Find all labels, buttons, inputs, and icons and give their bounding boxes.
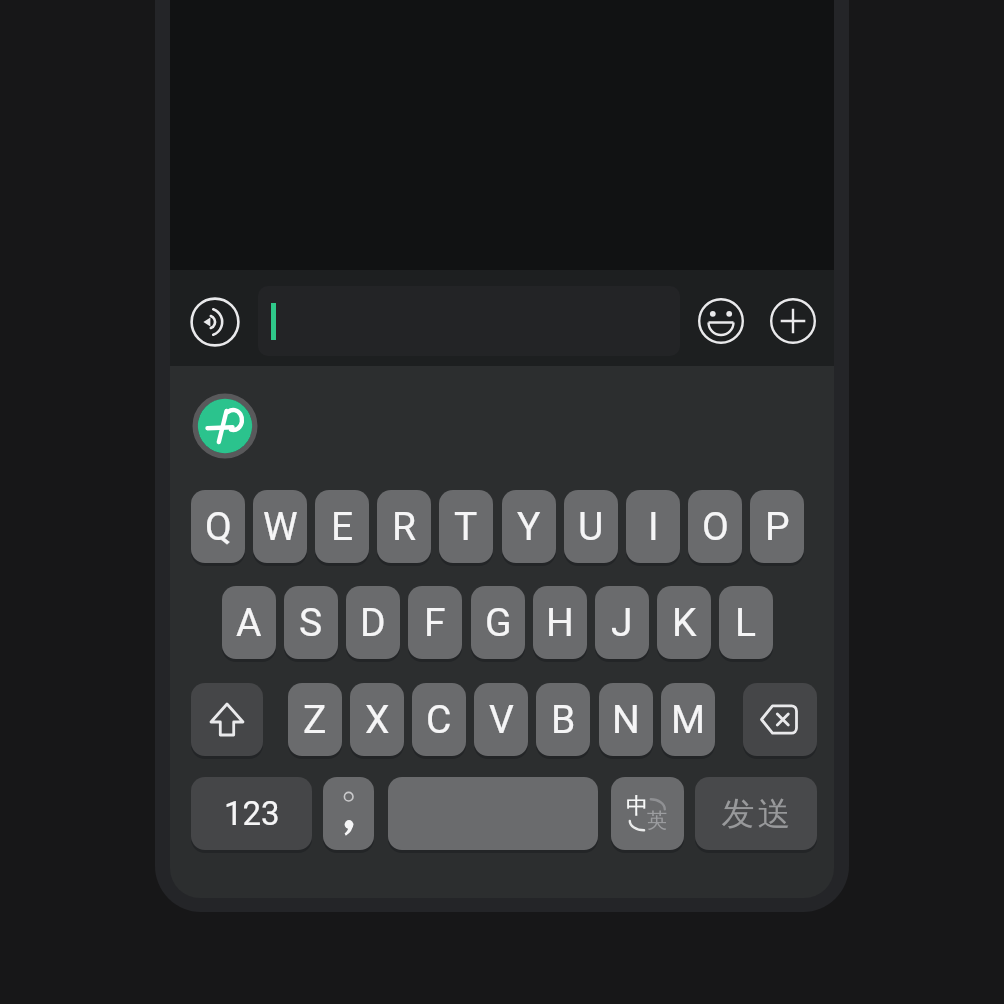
button[interactable] xyxy=(190,297,240,347)
staticText: 英 xyxy=(647,808,667,833)
staticText: L xyxy=(735,600,757,646)
staticText: E xyxy=(331,504,354,550)
button[interactable]: N xyxy=(599,683,653,756)
button[interactable]: W xyxy=(253,490,307,563)
staticText: P xyxy=(765,504,790,550)
button[interactable] xyxy=(191,683,263,756)
staticText: O xyxy=(702,504,729,550)
staticText: J xyxy=(611,600,633,646)
staticText: B xyxy=(551,697,576,743)
staticText: D xyxy=(360,600,386,646)
staticText: V xyxy=(489,697,514,743)
staticText: K xyxy=(672,600,697,646)
staticText: I xyxy=(648,504,659,550)
button[interactable]: J xyxy=(595,586,649,659)
button[interactable]: D xyxy=(346,586,400,659)
button[interactable]: V xyxy=(474,683,528,756)
button[interactable] xyxy=(388,777,598,850)
staticText: C xyxy=(426,697,452,743)
button[interactable]: S xyxy=(284,586,338,659)
button[interactable]: B xyxy=(536,683,590,756)
button[interactable]: C xyxy=(412,683,466,756)
staticText: T xyxy=(454,504,478,550)
staticText: G xyxy=(485,600,512,646)
button[interactable] xyxy=(258,286,680,356)
staticText: 123 xyxy=(224,794,280,833)
button[interactable]: X xyxy=(350,683,404,756)
button[interactable]: T xyxy=(439,490,493,563)
button[interactable] xyxy=(696,296,746,346)
staticText: Y xyxy=(517,504,541,550)
button[interactable]: Q xyxy=(191,490,245,563)
staticText: U xyxy=(578,504,604,550)
staticText: N xyxy=(612,697,640,743)
staticText: R xyxy=(392,504,417,550)
staticText: 发送 xyxy=(720,793,792,835)
button[interactable]: I xyxy=(626,490,680,563)
button[interactable] xyxy=(323,777,374,850)
button[interactable]: R xyxy=(377,490,431,563)
button[interactable]: 123 xyxy=(191,777,312,850)
staticText: M xyxy=(671,697,706,743)
button[interactable]: G xyxy=(471,586,525,659)
button[interactable]: Y xyxy=(502,490,556,563)
button[interactable]: L xyxy=(719,586,773,659)
button[interactable]: F xyxy=(408,586,462,659)
staticText: W xyxy=(263,504,298,550)
staticText: A xyxy=(236,600,262,646)
button[interactable]: O xyxy=(688,490,742,563)
staticText: H xyxy=(546,600,574,646)
button[interactable]: A xyxy=(222,586,276,659)
staticText: X xyxy=(365,697,390,743)
button[interactable]: 中 xyxy=(611,777,684,850)
button[interactable] xyxy=(192,393,258,459)
button[interactable]: M xyxy=(661,683,715,756)
staticText: Z xyxy=(303,697,327,743)
staticText: 中 xyxy=(626,792,648,820)
button[interactable]: 发送 xyxy=(695,777,817,850)
staticText: Q xyxy=(205,504,232,550)
button[interactable]: Z xyxy=(288,683,342,756)
staticText: F xyxy=(424,600,446,646)
button[interactable]: H xyxy=(533,586,587,659)
button[interactable] xyxy=(743,683,817,756)
button[interactable]: E xyxy=(315,490,369,563)
button[interactable]: P xyxy=(750,490,804,563)
button[interactable]: K xyxy=(657,586,711,659)
button[interactable] xyxy=(768,296,818,346)
button[interactable]: U xyxy=(564,490,618,563)
staticText: S xyxy=(299,600,323,646)
